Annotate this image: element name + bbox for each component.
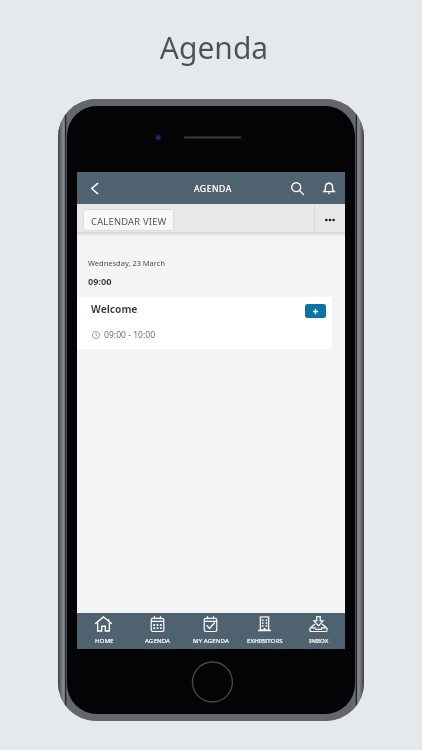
button[interactable]: CALENDAR VIEW (83, 209, 174, 231)
staticText: EXHIBITORS (247, 636, 283, 644)
button[interactable]: Add to my agenda (305, 304, 326, 318)
button[interactable]: Welcome (77, 297, 332, 349)
staticText: CALENDAR VIEW (91, 215, 167, 228)
staticText: Agenda (3, 27, 422, 68)
button[interactable]: INBOX (291, 613, 345, 649)
button[interactable]: MY AGENDA (183, 613, 237, 649)
staticText: Welcome (91, 302, 138, 316)
button[interactable]: EXHIBITORS (237, 613, 291, 649)
button[interactable]: Search (284, 172, 310, 204)
button[interactable]: Notifications (316, 172, 342, 204)
staticText: 09:00 - 10:00 (104, 329, 156, 341)
staticText: MY AGENDA (193, 636, 229, 644)
staticText: HOME (95, 636, 114, 644)
staticText: 09:00 (88, 275, 112, 288)
button[interactable]: More options (314, 204, 345, 232)
staticText: INBOX (309, 636, 329, 644)
button[interactable]: AGENDA (130, 613, 183, 649)
staticText: AGENDA (194, 183, 232, 195)
button[interactable]: Back (77, 172, 107, 204)
button[interactable]: HOME (77, 613, 130, 649)
staticText: AGENDA (145, 636, 171, 644)
staticText: Wednesday, 23 March (88, 258, 166, 268)
